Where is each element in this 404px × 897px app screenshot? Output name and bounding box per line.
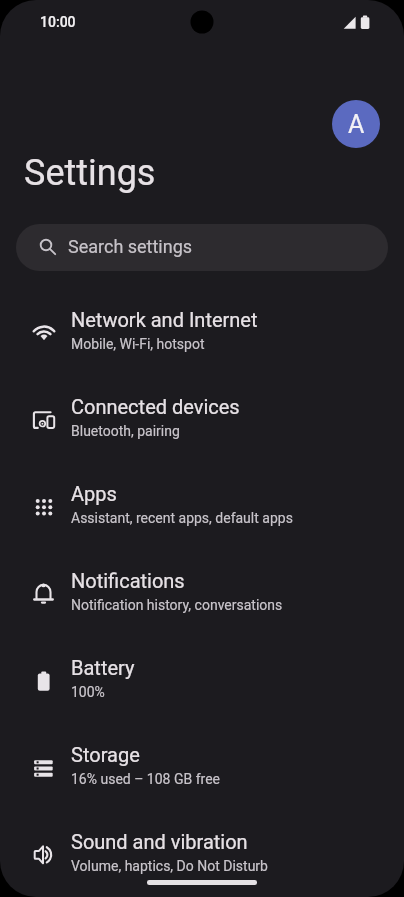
staticText: Bluetooth, pairing [71,423,180,439]
staticText: Sound and vibration [71,830,248,853]
button[interactable]: Network and Internet [0,289,404,376]
staticText: Mobile, Wi-Fi, hotspot [71,336,205,352]
button[interactable]: Search settings [16,224,388,271]
staticText: 16% used – 108 GB free [71,771,220,787]
button[interactable]: A [332,100,380,148]
button[interactable]: Notifications [0,550,404,637]
button[interactable]: Apps [0,463,404,550]
button[interactable]: Sound and vibration [0,811,404,897]
staticText: 10:00 [40,14,76,30]
button[interactable]: Storage [0,724,404,811]
button[interactable]: Connected devices [0,376,404,463]
staticText: Battery [71,656,135,679]
staticText: 100% [71,684,105,700]
staticText: Notifications [71,569,185,592]
staticText: A [348,110,365,139]
staticText: Assistant, recent apps, default apps [71,510,293,526]
staticText: Settings [24,152,156,194]
staticText: Search settings [68,236,193,257]
staticText: Apps [71,482,117,505]
staticText: Notification history, conversations [71,597,283,613]
staticText: Connected devices [71,395,240,418]
staticText: Volume, haptics, Do Not Disturb [71,858,268,874]
staticText: Network and Internet [71,308,258,331]
staticText: Storage [71,743,140,766]
button[interactable]: Battery [0,637,404,724]
